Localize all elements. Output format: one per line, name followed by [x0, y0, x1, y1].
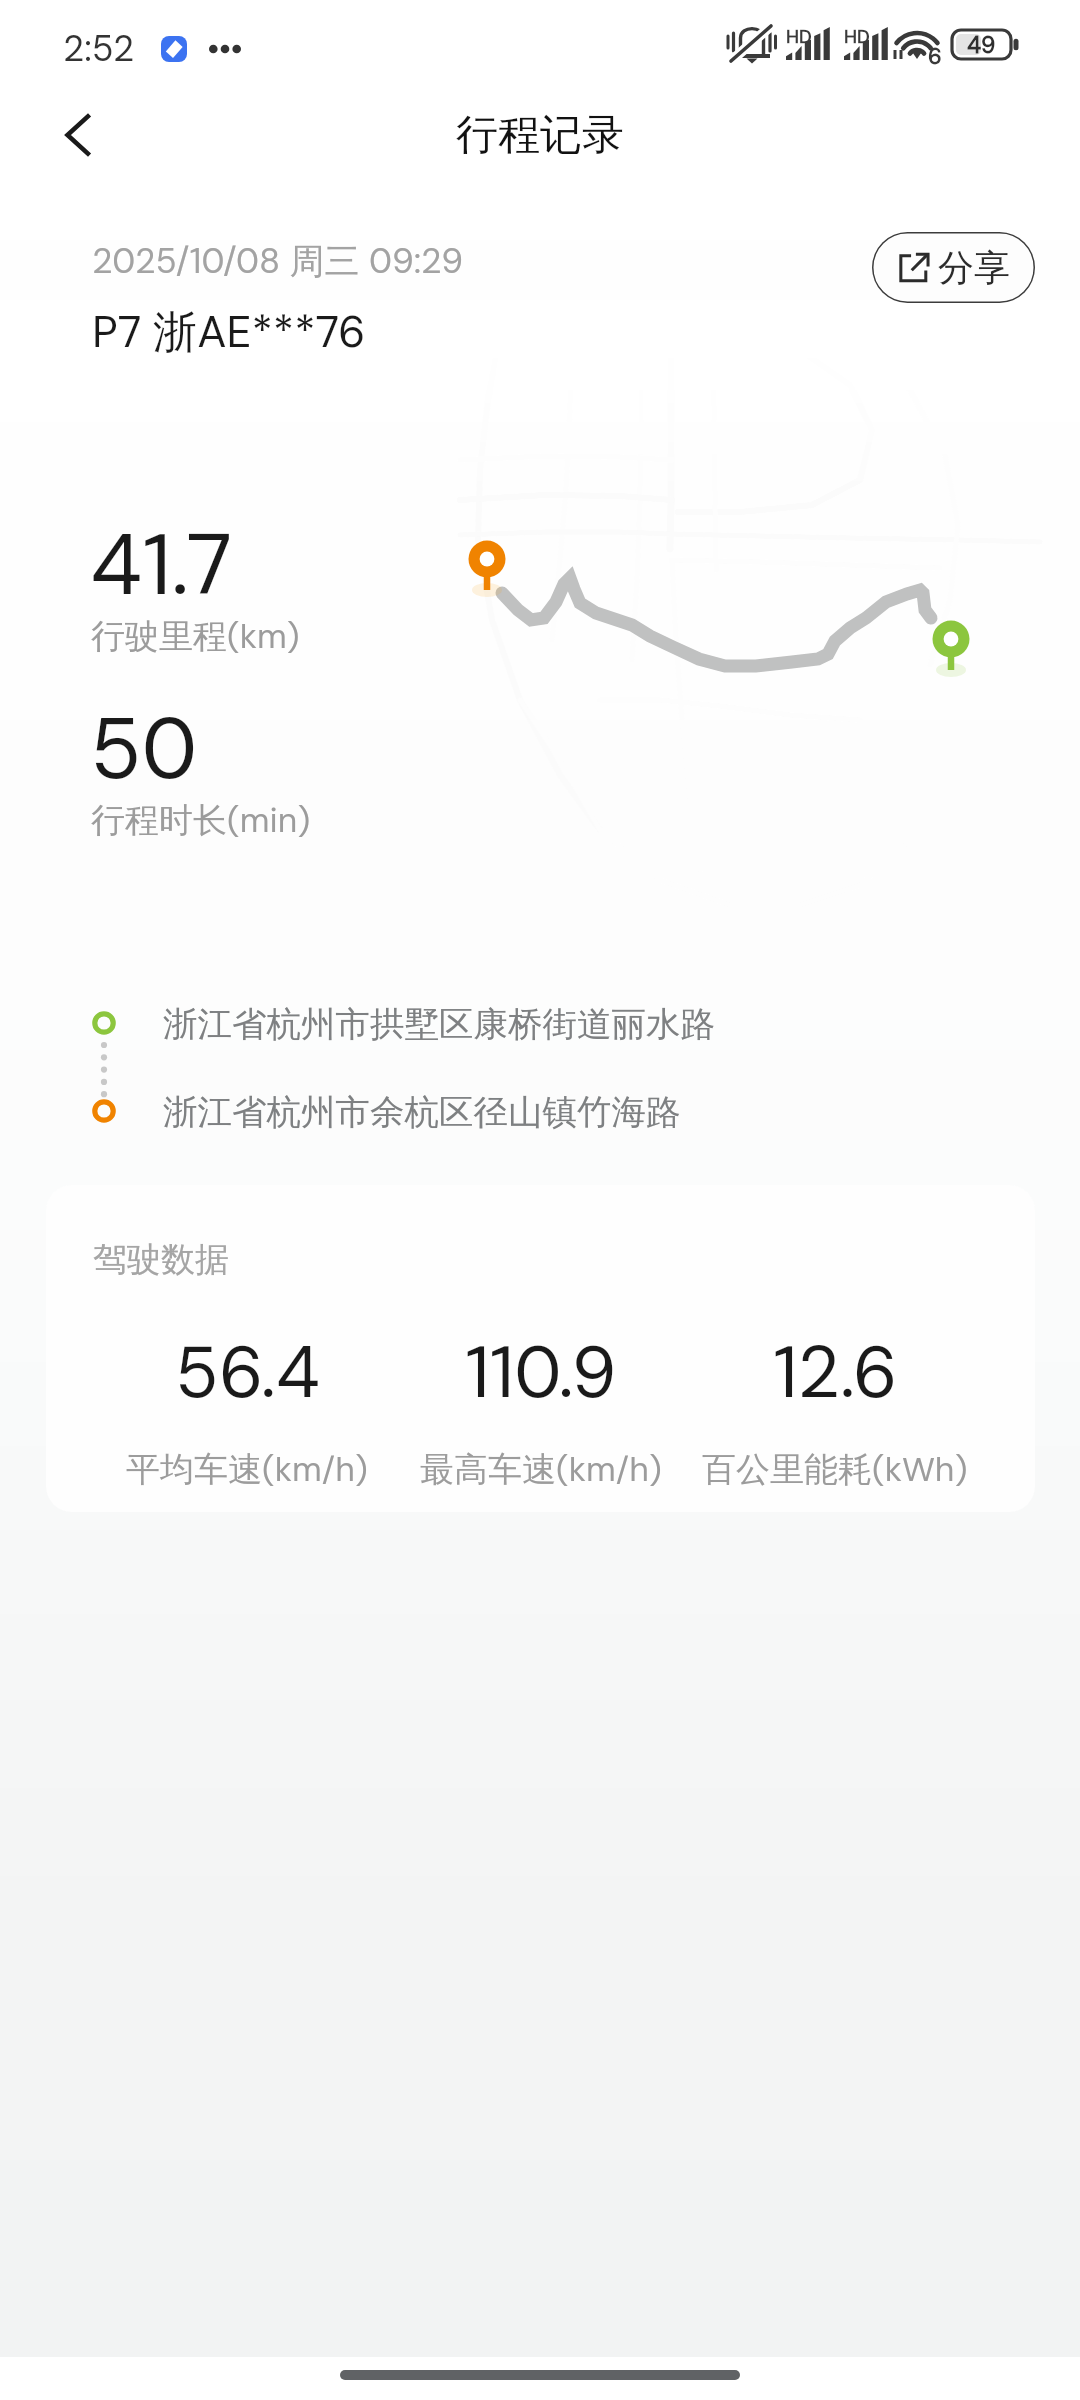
staticText: 行程记录 [456, 109, 624, 162]
staticText: 百公里能耗(kWh) [702, 1447, 968, 1491]
button[interactable]: 浙江省杭州市拱墅区康桥街道丽水路 [80, 990, 1000, 1058]
staticText: 驾驶数据 [93, 1238, 229, 1281]
staticText: 110.9 [465, 1326, 617, 1420]
staticText: HD [786, 24, 812, 49]
staticText: 浙江省杭州市余杭区径山镇竹海路 [163, 1091, 681, 1134]
staticText: 2:52 [63, 25, 135, 72]
staticText: 12.6 [773, 1326, 898, 1420]
button[interactable]: 分享 [872, 232, 1035, 303]
staticText: 浙江省杭州市拱墅区康桥街道丽水路 [163, 1003, 715, 1046]
staticText: P7 浙AE***76 [92, 303, 366, 360]
staticText: 49 [967, 30, 996, 59]
staticText: HD [844, 24, 870, 49]
button[interactable]: 浙江省杭州市余杭区径山镇竹海路 [80, 1078, 1000, 1146]
staticText: 最高车速(km/h) [420, 1447, 662, 1491]
staticText: 2025/10/08 周三 09:29 [92, 238, 464, 284]
button[interactable]: Back [36, 92, 122, 178]
button[interactable]: 驾驶数据 [46, 1185, 1035, 1512]
staticText: 平均车速(km/h) [126, 1447, 368, 1491]
staticText: 50 [90, 694, 198, 805]
staticText: 分享 [938, 245, 1010, 290]
staticText: 行程时长(min) [91, 798, 311, 842]
staticText: 41.7 [90, 510, 233, 621]
staticText: 行驶里程(km) [91, 614, 300, 658]
staticText: 6 [928, 42, 942, 71]
staticText: 56.4 [175, 1326, 320, 1420]
